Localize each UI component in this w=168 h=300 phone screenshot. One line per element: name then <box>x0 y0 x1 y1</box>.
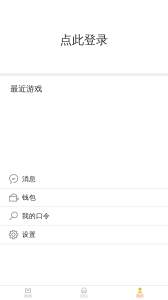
staticText: 消息 <box>22 175 36 183</box>
staticText: 最近游戏 <box>10 84 42 94</box>
staticText: 我的 <box>136 293 144 298</box>
button[interactable]: 我的口令 <box>0 207 168 226</box>
staticText: 论坛 <box>80 293 88 298</box>
staticText: 我的口令 <box>22 212 50 220</box>
button[interactable]: 游戏 <box>0 286 56 300</box>
button[interactable]: 钱包 <box>0 189 168 207</box>
button[interactable]: 我的 <box>112 286 168 300</box>
staticText: 点此登录 <box>60 32 108 47</box>
staticText: 游戏 <box>24 293 32 298</box>
button[interactable]: 论坛 <box>56 286 112 300</box>
staticText: 钱包 <box>22 193 36 202</box>
button[interactable]: 点此登录 <box>0 0 168 73</box>
button[interactable]: 设置 <box>0 226 168 244</box>
staticText: 设置 <box>22 230 36 239</box>
button[interactable]: 消息 <box>0 170 168 189</box>
